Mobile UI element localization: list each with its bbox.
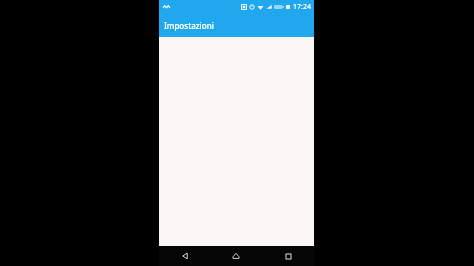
button[interactable]: Recent apps bbox=[262, 246, 314, 266]
button[interactable]: Back bbox=[159, 246, 210, 266]
button[interactable]: Impostazioni bbox=[159, 13, 314, 37]
staticText: Impostazioni bbox=[164, 20, 214, 31]
button[interactable]: Home bbox=[210, 246, 262, 266]
staticText: 17:24 bbox=[293, 2, 311, 12]
